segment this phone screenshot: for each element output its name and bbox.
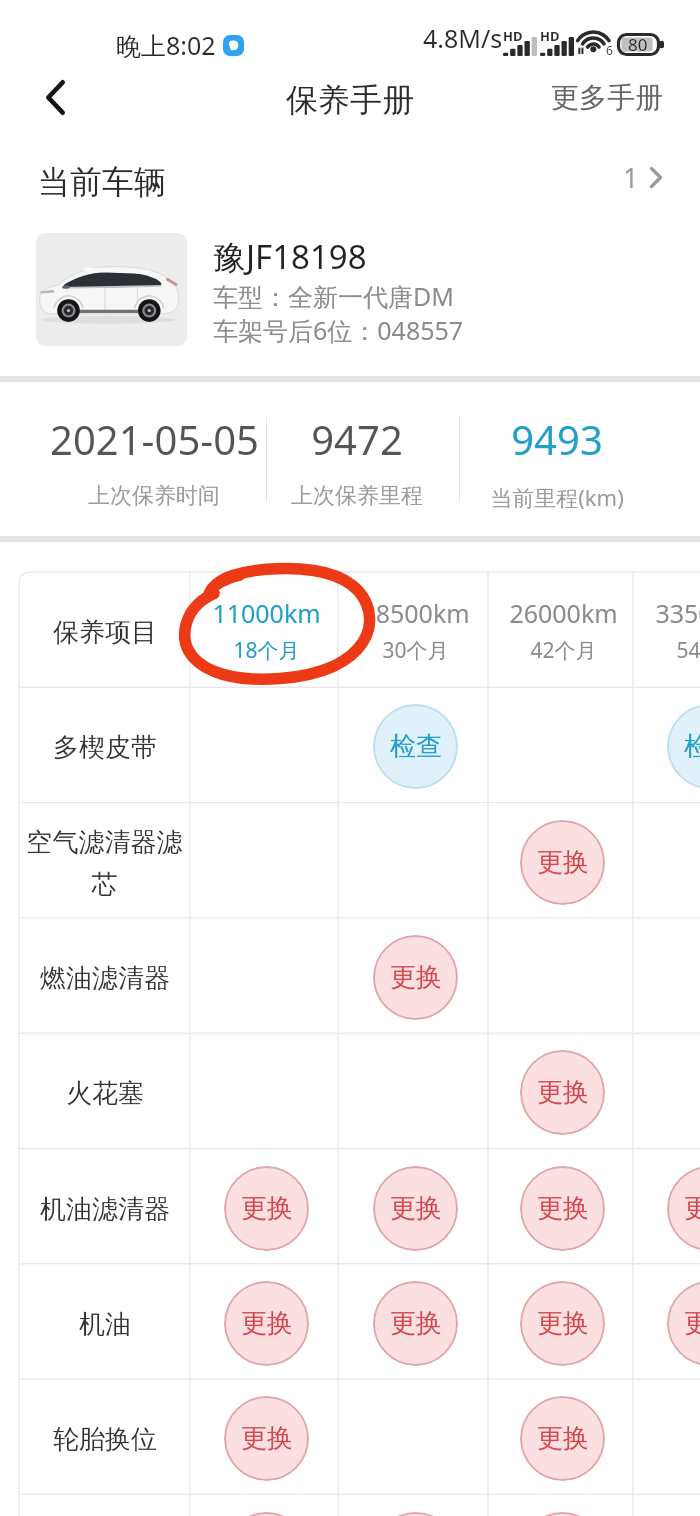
staticText: 车架号后6位：048557 (213, 313, 464, 347)
staticText: 火花塞 (66, 1077, 144, 1110)
staticText: HD (540, 27, 560, 45)
staticText: 更换 (537, 1422, 589, 1455)
button[interactable]: 更换 (373, 1281, 458, 1366)
staticText: 9472 (311, 412, 403, 466)
button[interactable]: 检查 (373, 704, 458, 789)
staticText: 2021-05-05 (50, 412, 259, 466)
staticText: 更多手册 (551, 80, 663, 115)
staticText: 更换 (684, 1192, 700, 1225)
button[interactable]: 更换 (520, 1166, 605, 1251)
button[interactable]: 多楔皮带 (19, 687, 190, 802)
button[interactable]: 燃油滤清器 (19, 918, 190, 1033)
staticText: 当前里程(km) (490, 482, 624, 512)
staticText: 42个月 (530, 636, 597, 665)
staticText: 当前车辆 (38, 162, 166, 202)
staticText: 机油滤清器 (40, 1193, 170, 1226)
staticText: 上次保养里程 (291, 482, 423, 510)
staticText: 更换 (684, 1307, 700, 1340)
button[interactable]: 9493 (447, 412, 667, 512)
button[interactable]: 更换 (520, 1050, 605, 1135)
button[interactable]: 更换 (520, 1512, 605, 1516)
button[interactable]: 更换 (520, 1281, 605, 1366)
staticText: 更换 (537, 1076, 589, 1109)
staticText: 保养项目 (53, 616, 157, 649)
button[interactable]: 更换 (373, 1166, 458, 1251)
staticText: 更换 (390, 961, 442, 994)
staticText: 燃油滤清器 (40, 962, 170, 995)
staticText: 空气滤清器滤芯 (22, 826, 187, 901)
button[interactable]: 更换 (373, 935, 458, 1020)
staticText: 33500km (655, 596, 700, 630)
staticText: 车型：全新一代唐DM (213, 279, 454, 313)
button[interactable]: 更换 (224, 1166, 309, 1251)
staticText: 26000km (509, 596, 618, 630)
staticText: 更换 (241, 1422, 293, 1455)
staticText: 更换 (390, 1192, 442, 1225)
button[interactable]: 更换 (520, 1396, 605, 1481)
staticText: 4.8M/s (423, 21, 503, 55)
staticText: 11000km (212, 596, 321, 630)
button[interactable]: 检查 (667, 704, 700, 789)
staticText: 80 (628, 33, 648, 56)
button[interactable]: 豫JF18198 (0, 222, 700, 362)
staticText: 轮胎换位 (53, 1423, 157, 1456)
button[interactable]: 更换 (667, 1166, 700, 1251)
button[interactable]: 更换 (667, 1281, 700, 1366)
staticText: 30个月 (382, 636, 449, 665)
staticText: 检查 (390, 730, 442, 763)
button[interactable]: 更多手册 (531, 66, 700, 129)
button[interactable]: 轮胎换位 (19, 1379, 190, 1494)
button[interactable]: 更换 (224, 1512, 309, 1516)
button[interactable]: 空气滤清器滤芯 (19, 803, 190, 918)
staticText: 54个月 (676, 636, 700, 665)
button[interactable]: 更换 (224, 1281, 309, 1366)
button[interactable]: 11000km (166, 596, 366, 665)
button[interactable]: 33500km (609, 596, 700, 665)
button[interactable]: 机油滤清器 (19, 1149, 190, 1264)
staticText: 上次保养时间 (88, 482, 220, 510)
staticText: 1 (623, 159, 639, 196)
staticText: 保养手册 (286, 80, 414, 120)
staticText: 多楔皮带 (53, 731, 157, 764)
staticText: 更换 (537, 1307, 589, 1340)
staticText: 豫JF18198 (213, 234, 367, 279)
button[interactable]: 26000km (463, 596, 663, 665)
staticText: 18个月 (233, 636, 300, 665)
staticText: 机油 (79, 1308, 131, 1341)
staticText: 更换 (390, 1307, 442, 1340)
button[interactable]: 火花塞 (19, 1033, 190, 1148)
button[interactable]: 机油 (19, 1264, 190, 1379)
button[interactable]: 18500km (315, 596, 515, 665)
staticText: 更换 (241, 1192, 293, 1225)
button[interactable]: 更换 (373, 1512, 458, 1516)
staticText: 更换 (537, 846, 589, 879)
button[interactable]: 制动液 (19, 1494, 190, 1516)
staticText: HD (503, 27, 523, 45)
staticText: 9493 (511, 412, 603, 466)
staticText: 18500km (361, 596, 470, 630)
button[interactable]: 2021-05-05 (44, 412, 264, 510)
button[interactable]: 当前车辆 (0, 140, 700, 210)
button[interactable]: Back (24, 66, 86, 128)
staticText: 检查 (684, 730, 700, 763)
button[interactable]: 9472 (247, 412, 467, 510)
staticText: 更换 (537, 1192, 589, 1225)
button[interactable]: 保养项目 (19, 572, 190, 687)
staticText: 6 (606, 42, 613, 58)
button[interactable]: 更换 (520, 820, 605, 905)
staticText: 更换 (241, 1307, 293, 1340)
button[interactable]: 更换 (224, 1396, 309, 1481)
staticText: 晚上8:02 (116, 28, 216, 62)
